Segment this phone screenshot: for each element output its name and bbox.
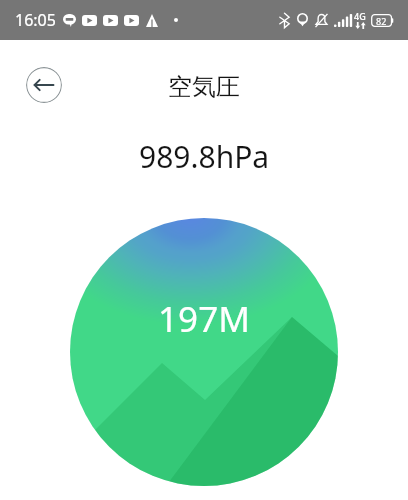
button[interactable]: Back (26, 67, 62, 103)
staticText: 空気圧 (168, 72, 240, 102)
staticText: 197M (158, 295, 250, 343)
staticText: 16:05 (15, 9, 56, 31)
staticText: 989.8hPa (139, 136, 270, 177)
staticText: 82 (376, 15, 387, 27)
staticText: 4G (354, 10, 366, 22)
